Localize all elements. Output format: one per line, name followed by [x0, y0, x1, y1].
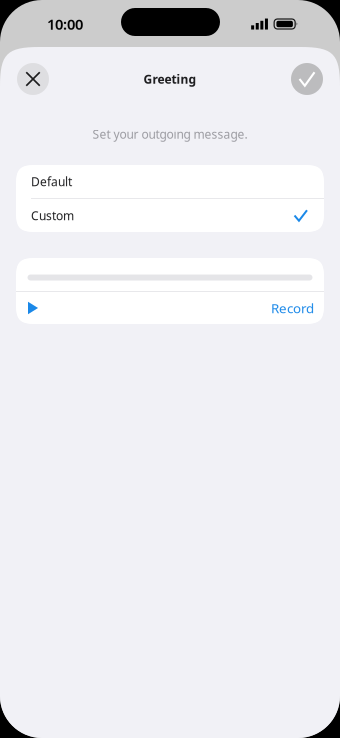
button[interactable]: Custom	[16, 199, 324, 232]
button[interactable]: Record	[16, 292, 324, 324]
button[interactable]: Default	[16, 165, 324, 198]
staticText: Custom	[31, 207, 74, 223]
staticText: Greeting	[143, 71, 196, 87]
button[interactable]: Done	[291, 63, 323, 95]
staticText: 10:00	[47, 14, 83, 34]
staticText: Record	[271, 299, 314, 317]
staticText: Set your outgoing message.	[92, 126, 247, 142]
staticText: Default	[31, 173, 72, 189]
button[interactable]: Close	[17, 63, 49, 95]
